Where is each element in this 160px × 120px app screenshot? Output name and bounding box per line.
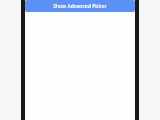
staticText: Show Advanced Picker (53, 3, 107, 10)
button[interactable]: Show Advanced Picker (25, 0, 135, 12)
